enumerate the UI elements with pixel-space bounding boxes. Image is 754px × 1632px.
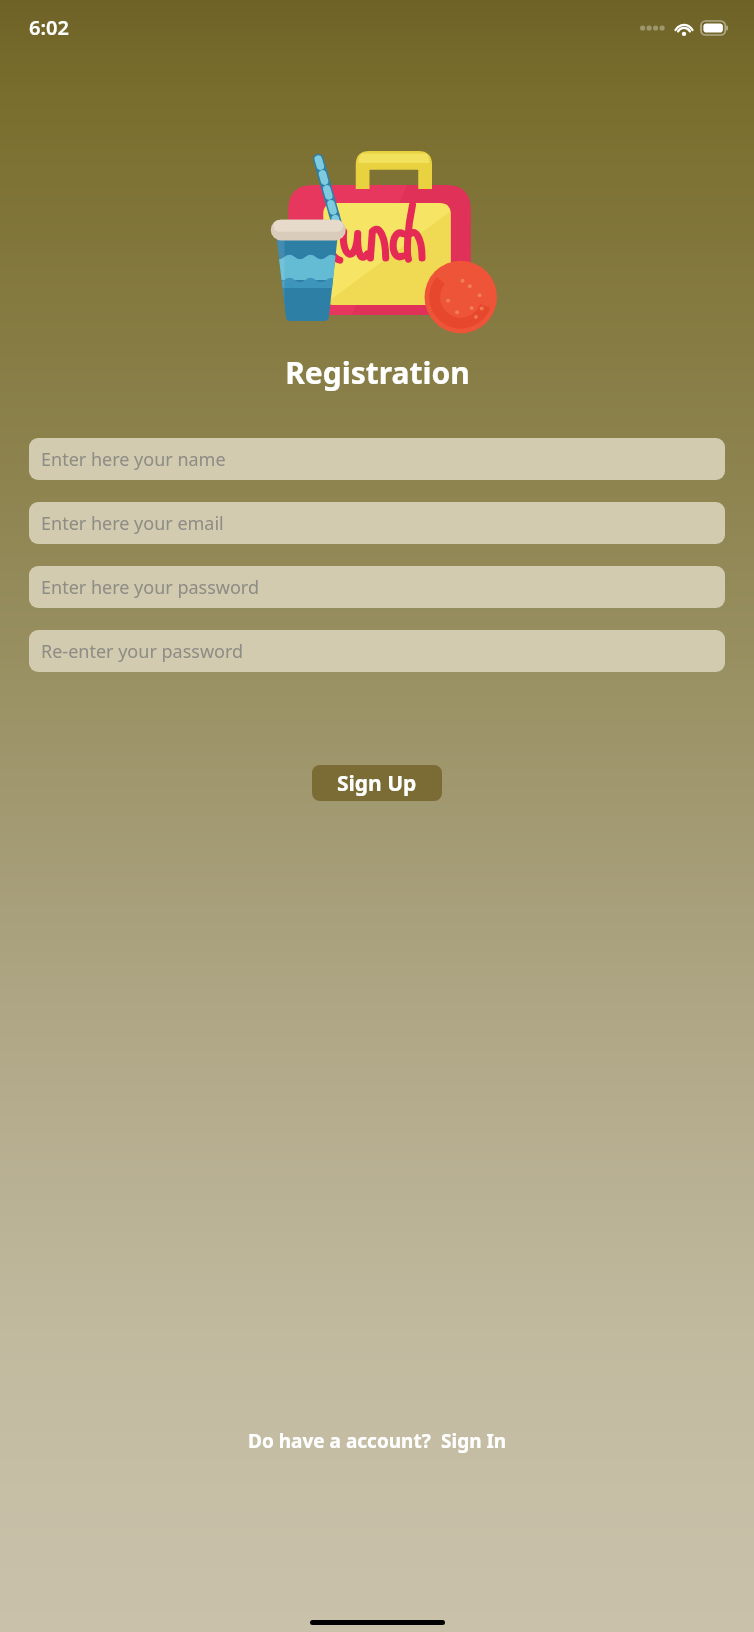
staticText: 6:02: [29, 14, 69, 41]
other: Lunch box illustration: [252, 140, 502, 340]
staticText: Sign Up: [337, 769, 417, 798]
staticText: Enter here your name: [41, 447, 226, 472]
staticText: Sign In: [441, 1428, 507, 1454]
button[interactable]: Re-enter your password: [29, 630, 725, 672]
button[interactable]: Sign Up: [312, 765, 442, 801]
staticText: Re-enter your password: [41, 639, 244, 664]
button[interactable]: Do have a account?: [238, 1422, 517, 1460]
staticText: Registration: [285, 352, 470, 393]
button[interactable]: Enter here your email: [29, 502, 725, 544]
button[interactable]: Enter here your password: [29, 566, 725, 608]
staticText: Enter here your password: [41, 575, 259, 600]
staticText: Do have a account?: [248, 1428, 431, 1454]
button[interactable]: Enter here your name: [29, 438, 725, 480]
staticText: Enter here your email: [41, 511, 224, 536]
